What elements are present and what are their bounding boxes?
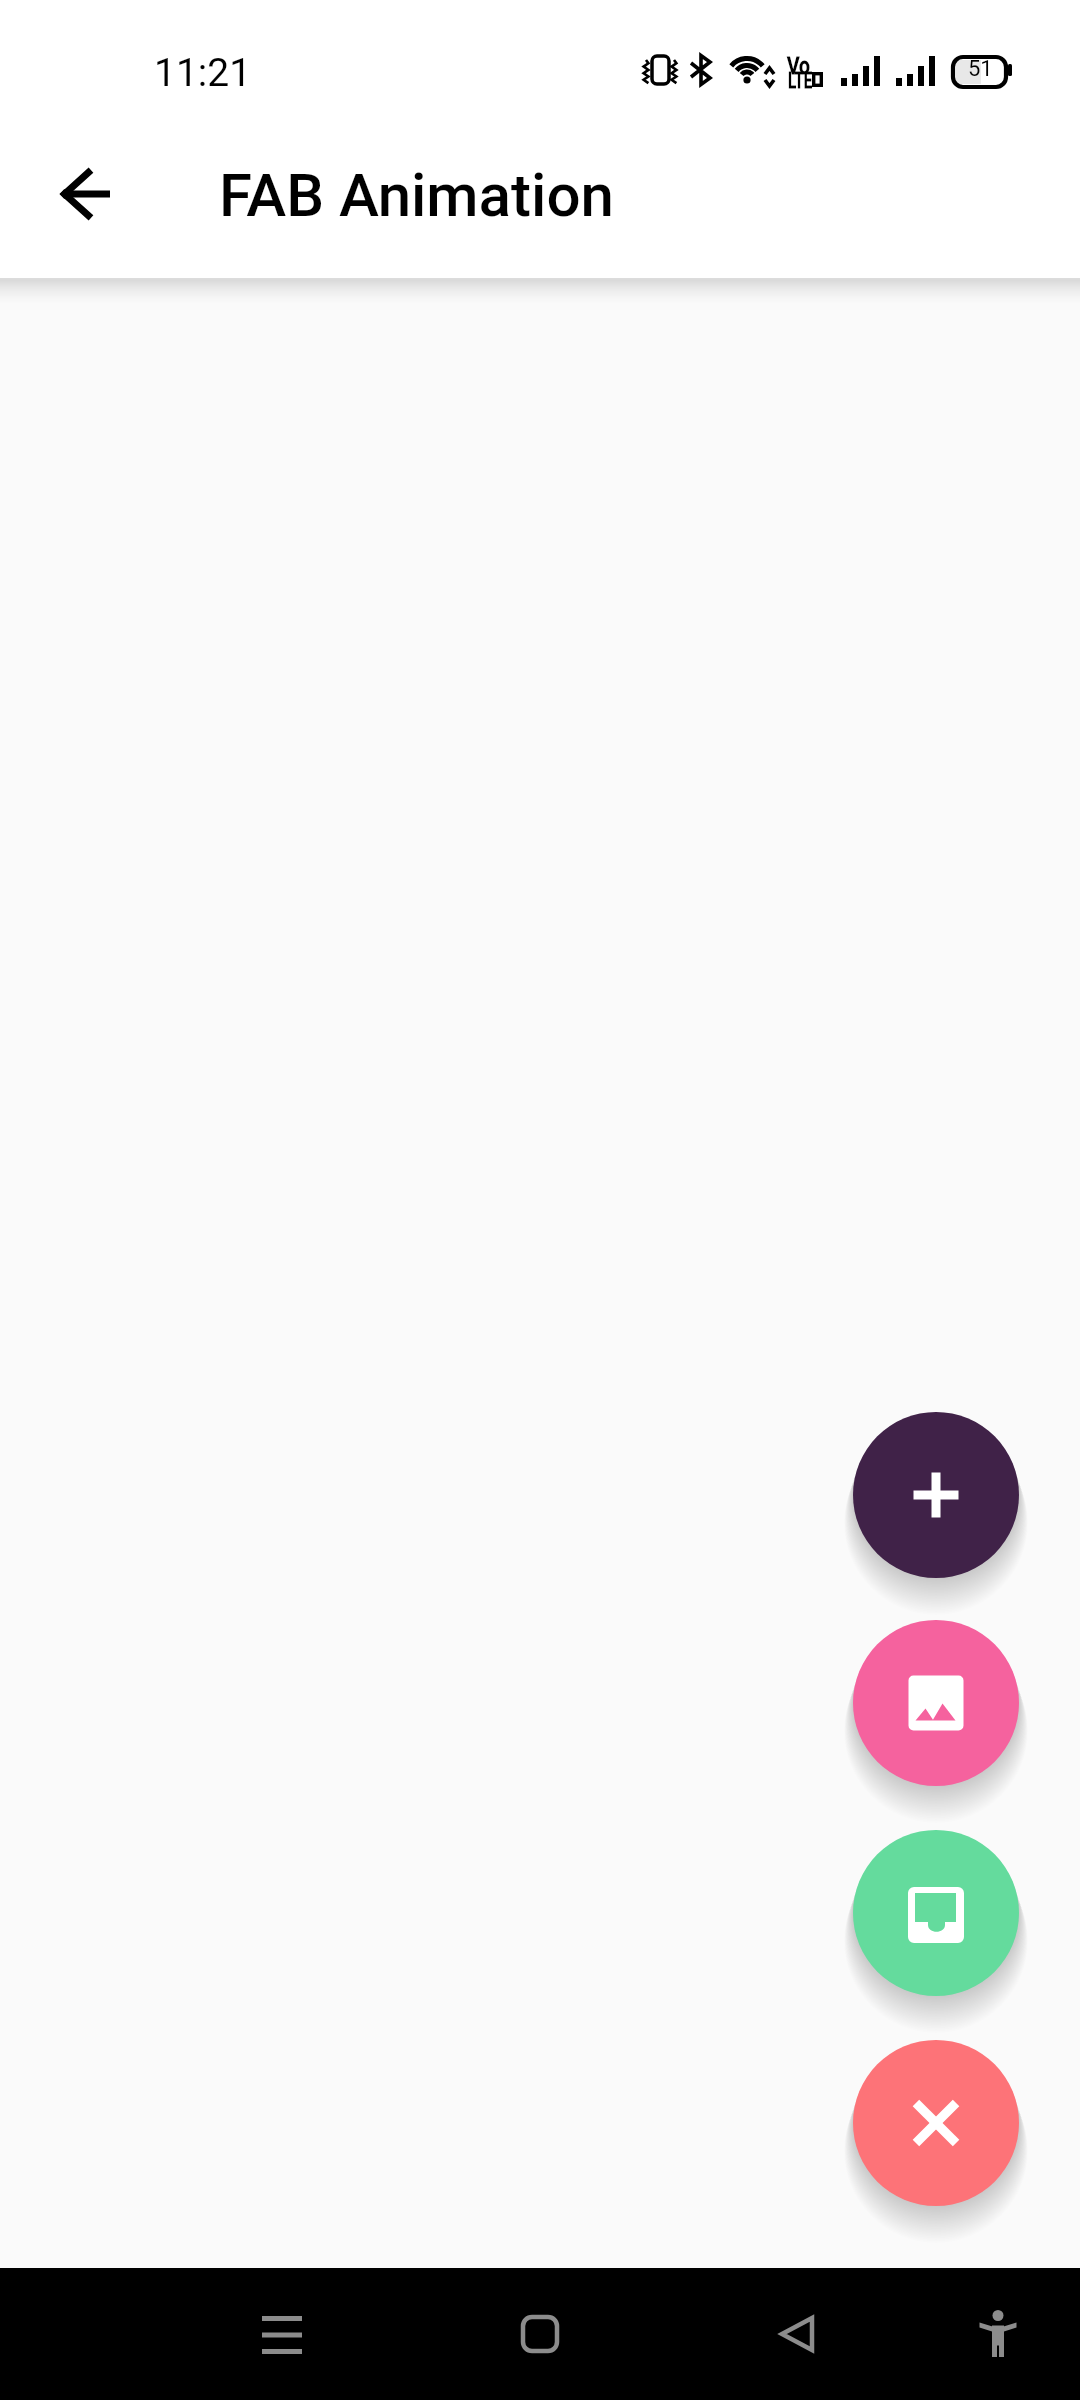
button[interactable]: Inbox <box>853 1830 1019 1996</box>
staticText: FAB Animation <box>219 160 614 230</box>
staticText: 11:21 <box>154 50 252 96</box>
button[interactable]: Back <box>737 2294 857 2374</box>
staticText: Vo <box>787 52 810 80</box>
staticText: LTE <box>788 68 812 94</box>
button[interactable]: Close <box>853 2040 1019 2206</box>
button[interactable]: Home <box>480 2294 600 2374</box>
button[interactable]: Accessibility <box>938 2294 1058 2374</box>
button[interactable]: Add <box>853 1412 1019 1578</box>
staticText: 51 <box>968 56 993 82</box>
button[interactable]: Back <box>16 124 156 264</box>
button[interactable]: Menu <box>222 2294 342 2374</box>
button[interactable]: Gallery <box>853 1620 1019 1786</box>
